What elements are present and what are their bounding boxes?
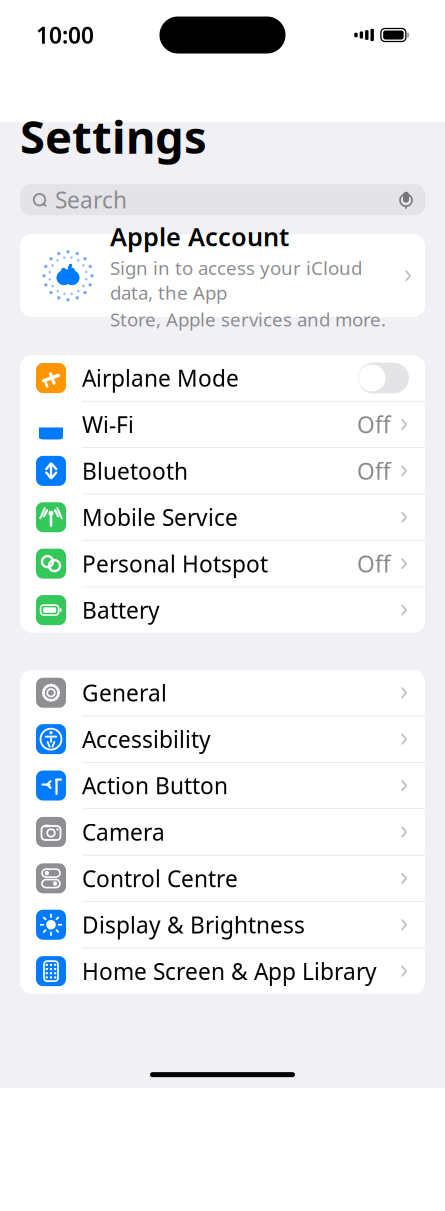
button[interactable]: Home Screen & App Library <box>20 948 425 994</box>
staticText: Search <box>55 185 127 215</box>
staticText: Battery <box>82 595 160 625</box>
staticText: Camera <box>82 817 165 847</box>
button[interactable]: Camera <box>20 809 425 855</box>
staticText: Display & Brightness <box>82 910 305 940</box>
staticText: Mobile Service <box>82 502 238 532</box>
button[interactable]: Search <box>20 184 425 215</box>
button[interactable]: Accessibility <box>20 716 425 763</box>
staticText: Bluetooth <box>82 456 188 486</box>
button[interactable]: Bluetooth <box>20 448 425 494</box>
button[interactable]: Wi-Fi <box>20 402 425 448</box>
button[interactable]: Mobile Service <box>20 494 425 541</box>
staticText: Settings <box>20 106 207 166</box>
staticText: Control Centre <box>82 863 238 893</box>
staticText: Store, Apple services and more. <box>110 307 386 332</box>
button[interactable]: General <box>20 670 425 716</box>
staticText: Off <box>357 456 391 486</box>
staticText: Home Screen & App Library <box>82 956 377 986</box>
button[interactable]: Airplane Mode <box>20 355 425 402</box>
button[interactable]: Display & Brightness <box>20 902 425 948</box>
staticText: Wi-Fi <box>82 409 134 439</box>
button[interactable]: Personal Hotspot <box>20 541 425 587</box>
staticText: Action Button <box>82 770 228 801</box>
button[interactable]: Apple Account <box>20 234 425 317</box>
staticText: Off <box>357 409 391 439</box>
staticText: Off <box>357 549 391 579</box>
staticText: Airplane Mode <box>82 363 239 393</box>
staticText: Accessibility <box>82 724 211 754</box>
staticText: General <box>82 678 167 708</box>
staticText: Apple Account <box>110 220 289 253</box>
button[interactable]: Battery <box>20 587 425 633</box>
button[interactable]: Control Centre <box>20 855 425 902</box>
button[interactable]: Action Button <box>20 763 425 809</box>
staticText: Personal Hotspot <box>82 549 268 579</box>
staticText: Sign in to access your iCloud data, the … <box>110 255 362 305</box>
